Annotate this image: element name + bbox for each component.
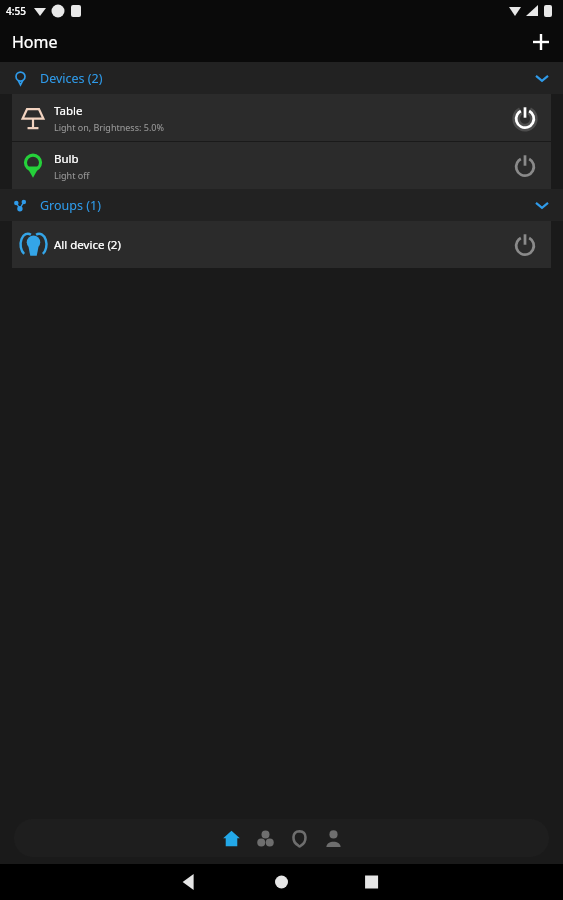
- button[interactable]: Table: [12, 94, 551, 141]
- button[interactable]: Toggle All device (2): [499, 221, 551, 268]
- button[interactable]: Collapse Groups (1): [521, 189, 563, 221]
- button[interactable]: Collapse Devices (2): [521, 62, 563, 94]
- staticText: Groups (1): [40, 197, 101, 214]
- button[interactable]: Turn on Bulb: [499, 142, 551, 189]
- staticText: Home: [12, 31, 58, 53]
- button[interactable]: Groups: [248, 819, 282, 857]
- button[interactable]: Devices (2): [0, 62, 563, 94]
- button[interactable]: Turn off Table: [499, 94, 551, 141]
- button[interactable]: Profile: [316, 819, 350, 857]
- staticText: Bulb: [54, 151, 79, 167]
- button[interactable]: All device (2): [12, 221, 551, 268]
- button[interactable]: Scenes: [282, 819, 316, 857]
- staticText: Light on, Brightness: 5.0%: [54, 121, 164, 133]
- staticText: Devices (2): [40, 70, 103, 87]
- staticText: All device (2): [54, 237, 121, 253]
- button[interactable]: Bulb: [12, 142, 551, 189]
- staticText: 4:55: [6, 4, 26, 18]
- staticText: Table: [54, 103, 83, 119]
- button[interactable]: Home: [214, 819, 248, 857]
- button[interactable]: Add device: [519, 22, 563, 62]
- button[interactable]: Groups (1): [0, 189, 563, 221]
- staticText: Light off: [54, 169, 90, 181]
